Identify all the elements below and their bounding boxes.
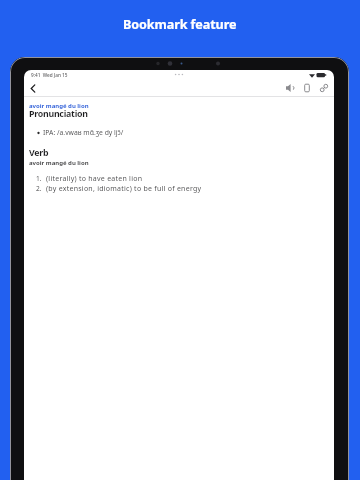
staticText: avoir mangé du lion — [29, 159, 89, 167]
staticText: Pronunciation — [29, 108, 88, 120]
staticText: 9:41 Wed Jan 15 — [31, 72, 68, 78]
staticText: Verb — [29, 147, 49, 159]
staticText: (literally) to have eaten lion — [46, 174, 143, 184]
staticText: Bookmark feature — [123, 16, 237, 33]
button[interactable] — [316, 81, 332, 97]
staticText: 1. — [36, 174, 42, 183]
staticText: IPA: /a.vwaʁ mɑ̃.ʒe dy ljɔ̃/ — [43, 128, 124, 137]
button[interactable] — [299, 81, 315, 97]
staticText: (by extension, idiomatic) to be full of … — [46, 184, 202, 194]
button[interactable] — [25, 81, 41, 97]
button[interactable] — [282, 81, 298, 97]
button[interactable]: avoir mangé du lion — [29, 102, 89, 110]
staticText: 2. — [36, 184, 42, 193]
